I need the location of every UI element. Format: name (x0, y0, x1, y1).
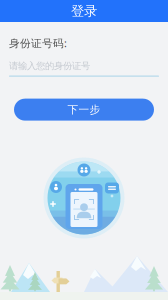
staticText: 下一步 (67, 103, 100, 116)
button[interactable]: 下一步 (14, 99, 154, 121)
staticText: 身份证号码: (9, 36, 67, 50)
staticText: 登录 (71, 3, 97, 19)
staticText: 请输入您的身份证号 (9, 60, 90, 72)
